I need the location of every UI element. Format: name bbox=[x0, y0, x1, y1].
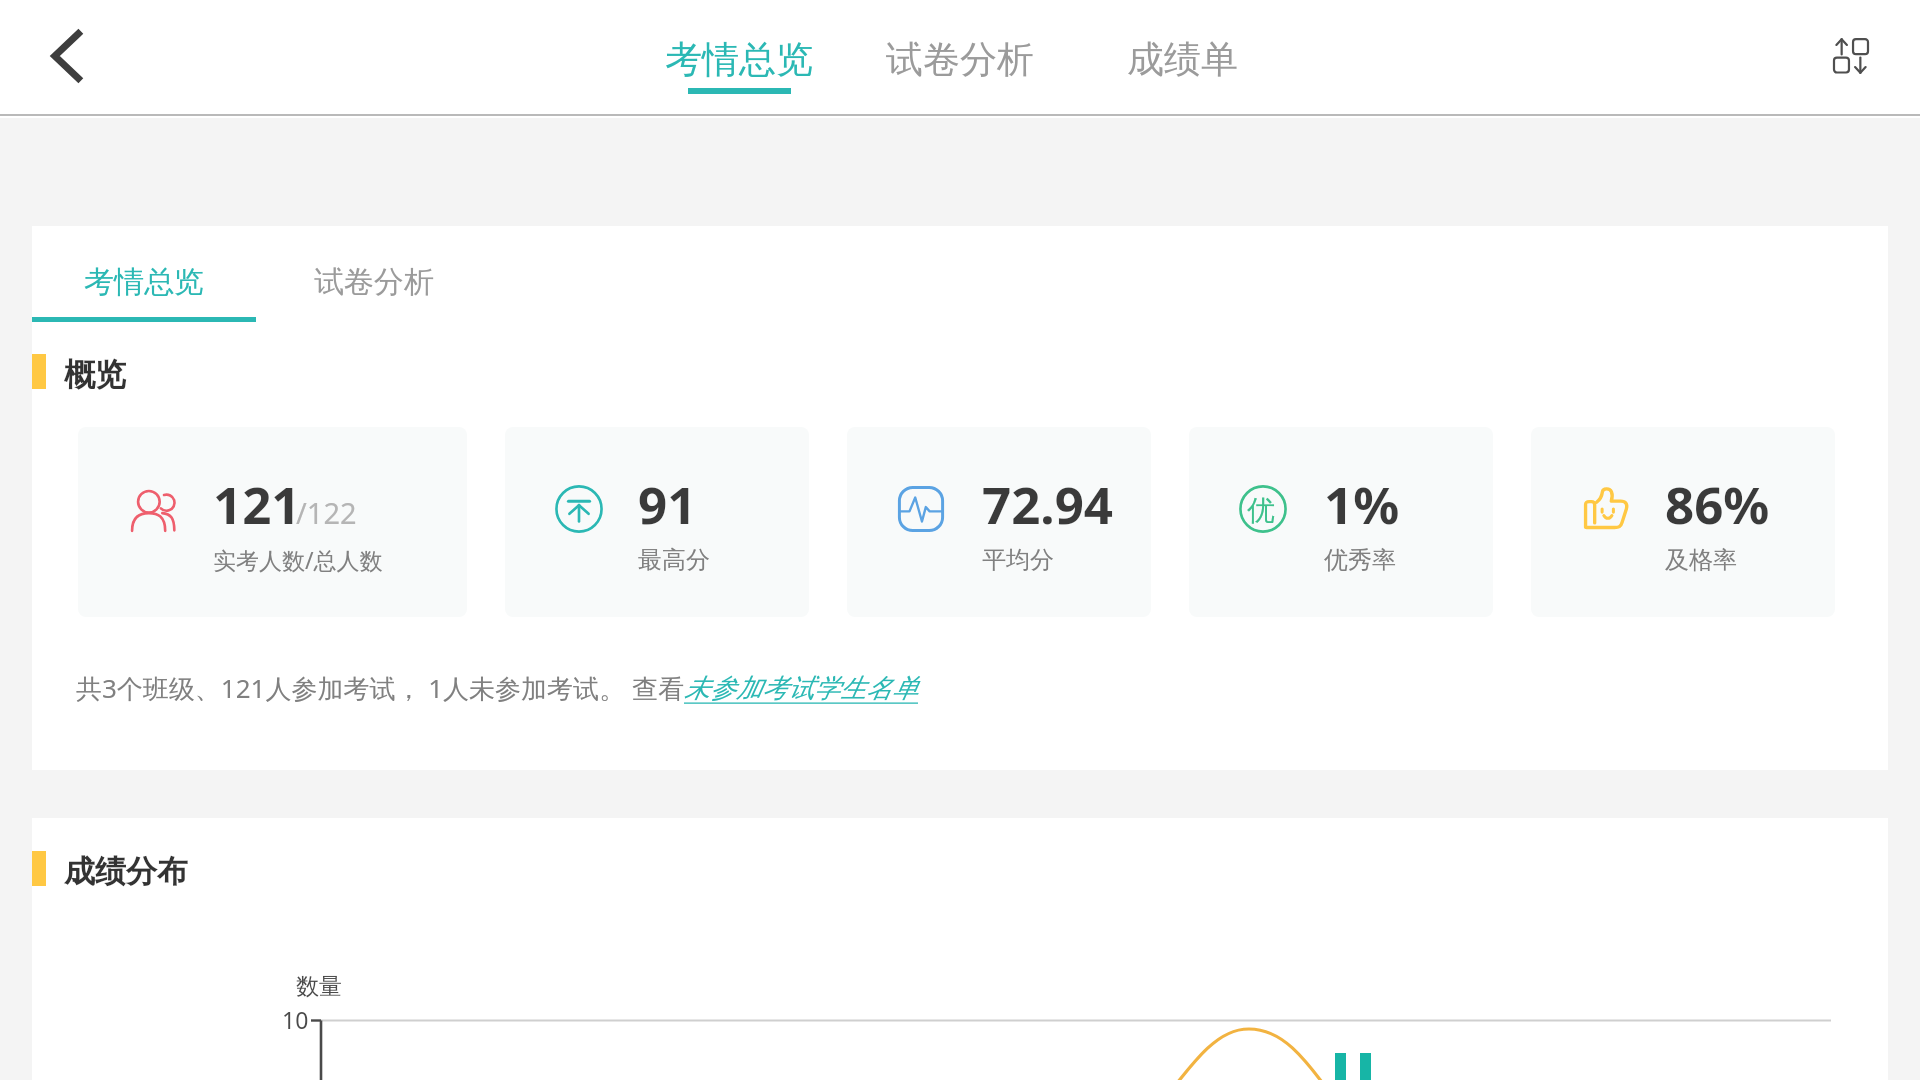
staticText: 平均分 bbox=[982, 545, 1054, 575]
staticText: 91 bbox=[638, 469, 697, 538]
button[interactable]: Back bbox=[38, 28, 94, 84]
staticText: 共3个班级、121人参加考试， 1人未参加考试。 查看 bbox=[76, 670, 684, 706]
button[interactable]: 121 bbox=[78, 427, 467, 617]
staticText: 实考人数/总人数 bbox=[213, 544, 383, 575]
staticText: 86% bbox=[1665, 469, 1770, 538]
button[interactable]: 成绩单 bbox=[1125, 36, 1240, 94]
button[interactable]: Sort bbox=[1814, 18, 1888, 92]
button[interactable]: 1% bbox=[1189, 427, 1493, 617]
staticText: 考情总览 bbox=[665, 36, 813, 83]
button[interactable]: 91 bbox=[505, 427, 809, 617]
button[interactable]: 72.94 bbox=[847, 427, 1151, 617]
staticText: 10 bbox=[282, 1004, 309, 1035]
staticText: 优秀率 bbox=[1324, 545, 1396, 575]
button[interactable]: 考情总览 bbox=[32, 263, 256, 322]
staticText: 成绩分布 bbox=[64, 852, 188, 891]
staticText: 72.94 bbox=[982, 469, 1114, 538]
staticText: 1% bbox=[1324, 469, 1400, 538]
staticText: 考情总览 bbox=[84, 263, 204, 301]
staticText: 最高分 bbox=[638, 545, 710, 575]
staticText: 概览 bbox=[64, 355, 126, 394]
staticText: 数量 bbox=[296, 972, 342, 1001]
staticText: 试卷分析 bbox=[886, 36, 1034, 83]
button[interactable]: 未参加考试学生名单 bbox=[684, 672, 918, 705]
button[interactable]: 86% bbox=[1531, 427, 1835, 617]
staticText: /122 bbox=[296, 493, 357, 532]
staticText: 及格率 bbox=[1665, 545, 1737, 575]
staticText: 试卷分析 bbox=[314, 263, 434, 301]
button[interactable]: 考情总览 bbox=[664, 36, 814, 94]
button[interactable]: 试卷分析 bbox=[885, 36, 1035, 94]
staticText: 121 bbox=[213, 469, 301, 538]
button[interactable]: 试卷分析 bbox=[262, 263, 486, 322]
staticText: 优 bbox=[1247, 493, 1275, 528]
staticText: 成绩单 bbox=[1127, 36, 1238, 83]
